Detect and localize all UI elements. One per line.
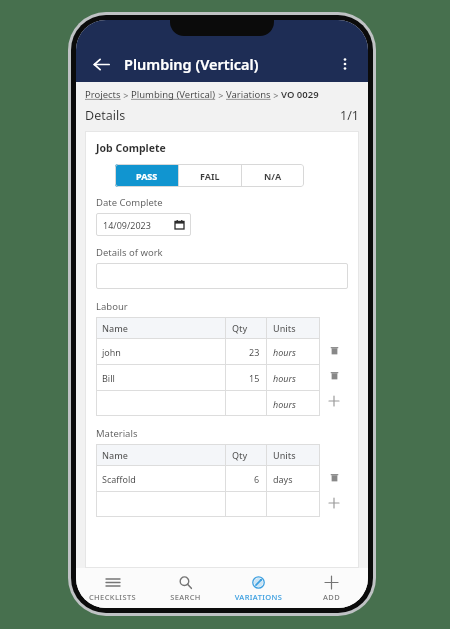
button[interactable]: Plumbing (Vertical) — [131, 88, 216, 101]
staticText: N/A — [264, 170, 282, 182]
staticText: Units — [273, 322, 296, 334]
staticText: PASS — [136, 170, 158, 182]
button[interactable] — [96, 263, 348, 289]
staticText: Materials — [96, 427, 138, 440]
button[interactable]: N/A — [242, 164, 304, 187]
staticText: 6 — [254, 473, 260, 485]
button[interactable]: CHECKLISTS — [76, 568, 149, 608]
staticText: 15 — [249, 372, 260, 384]
staticText: > — [121, 89, 131, 101]
button[interactable]: Projects — [85, 88, 121, 101]
staticText: VO 0029 — [281, 88, 319, 101]
button[interactable]: Variations — [226, 88, 271, 101]
staticText: hours — [273, 346, 296, 358]
staticText: Qty — [232, 449, 248, 461]
staticText: 1/1 — [340, 107, 359, 124]
staticText: hours — [273, 398, 296, 410]
staticText: Details — [85, 107, 126, 124]
staticText: > — [271, 89, 281, 101]
staticText: Details of work — [96, 246, 163, 259]
button[interactable]: More options — [330, 49, 360, 79]
button[interactable]: PASS — [115, 164, 178, 187]
staticText: Labour — [96, 300, 128, 313]
button[interactable]: 14/09/2023 — [96, 213, 191, 236]
staticText: FAIL — [200, 170, 220, 182]
staticText: Units — [273, 449, 296, 461]
staticText: Date Complete — [96, 196, 163, 209]
staticText: hours — [273, 372, 296, 384]
button[interactable]: FAIL — [179, 164, 241, 187]
staticText: Plumbing (Vertical) — [124, 54, 259, 74]
staticText: 23 — [249, 346, 260, 358]
staticText: john — [102, 346, 121, 358]
button[interactable]: Delete row — [320, 465, 348, 490]
staticText: Bill — [102, 372, 115, 384]
button[interactable]: Add row — [320, 388, 348, 413]
staticText: SEARCH — [149, 592, 222, 602]
staticText: 14/09/2023 — [103, 219, 151, 231]
button[interactable]: Delete row — [320, 363, 348, 388]
staticText: days — [273, 473, 293, 485]
button[interactable]: Back — [86, 49, 116, 79]
staticText: Scaffold — [102, 473, 136, 485]
staticText: Job Complete — [96, 141, 166, 155]
button[interactable]: Add row — [320, 490, 348, 515]
staticText: Qty — [232, 322, 248, 334]
staticText: Name — [102, 449, 128, 461]
staticText: VARIATIONS — [222, 592, 295, 602]
button[interactable]: SEARCH — [149, 568, 222, 608]
button[interactable]: VARIATIONS — [222, 568, 295, 608]
staticText: Name — [102, 322, 128, 334]
staticText: ADD — [295, 592, 368, 602]
staticText: > — [216, 89, 226, 101]
staticText: CHECKLISTS — [76, 592, 149, 602]
button[interactable]: ADD — [295, 568, 368, 608]
button[interactable]: Delete row — [320, 338, 348, 363]
